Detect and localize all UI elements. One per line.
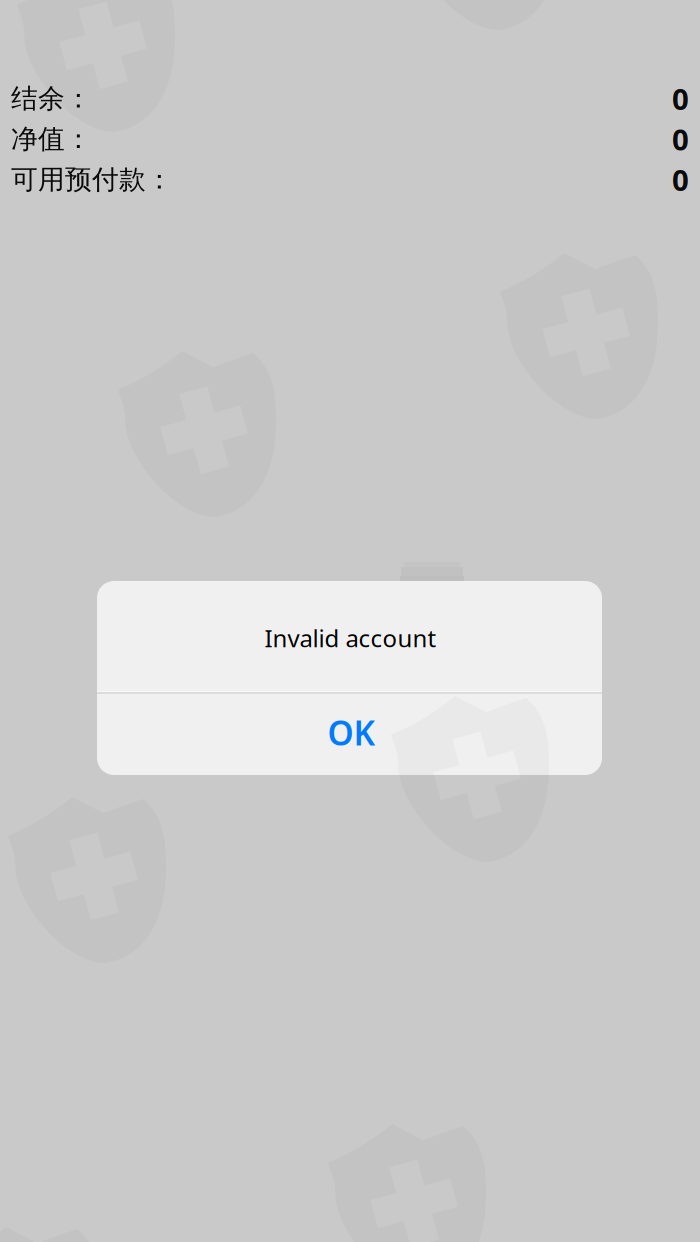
staticText: 净值： — [11, 123, 92, 155]
staticText: 0 — [672, 79, 689, 118]
staticText: 0 — [672, 160, 689, 199]
staticText: 0 — [672, 120, 689, 159]
staticText: OK — [327, 710, 375, 755]
staticText: 结余： — [11, 82, 92, 115]
button[interactable]: OK — [97, 694, 602, 775]
staticText: 可用预付款： — [11, 163, 173, 196]
staticText: Invalid account — [264, 622, 436, 654]
